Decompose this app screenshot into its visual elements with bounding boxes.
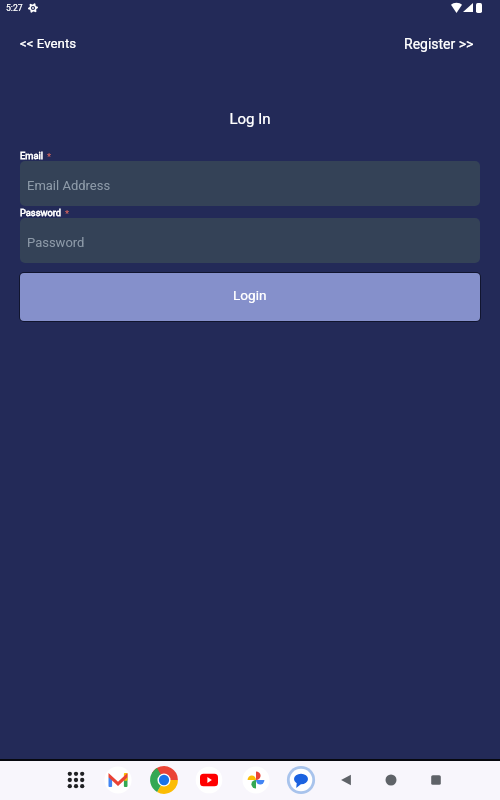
button[interactable]: Email Address (20, 161, 480, 206)
staticText: * (47, 151, 52, 162)
button[interactable]: Home (375, 764, 407, 796)
button[interactable]: YouTube (193, 764, 225, 796)
staticText: * (65, 208, 70, 219)
button[interactable]: Back (330, 764, 362, 796)
button[interactable]: Photos (240, 764, 272, 796)
staticText: Password (20, 207, 62, 218)
staticText: Email (20, 150, 44, 161)
button[interactable]: All apps (60, 764, 92, 796)
staticText: Password (27, 235, 85, 250)
button[interactable]: << Events (14, 32, 83, 56)
staticText: Log In (0, 110, 500, 128)
button[interactable]: Recents (420, 764, 452, 796)
button[interactable]: Register >> (398, 32, 480, 56)
button[interactable]: Password (20, 218, 480, 263)
staticText: Login (233, 287, 267, 303)
button[interactable]: Login (19, 272, 481, 322)
staticText: Register >> (404, 36, 474, 52)
staticText: Email Address (27, 178, 111, 193)
staticText: 5:27 (6, 3, 23, 13)
staticText: << Events (20, 36, 77, 52)
button[interactable]: Chrome (148, 764, 180, 796)
button[interactable]: Messages (285, 764, 317, 796)
button[interactable]: Gmail (102, 764, 134, 796)
